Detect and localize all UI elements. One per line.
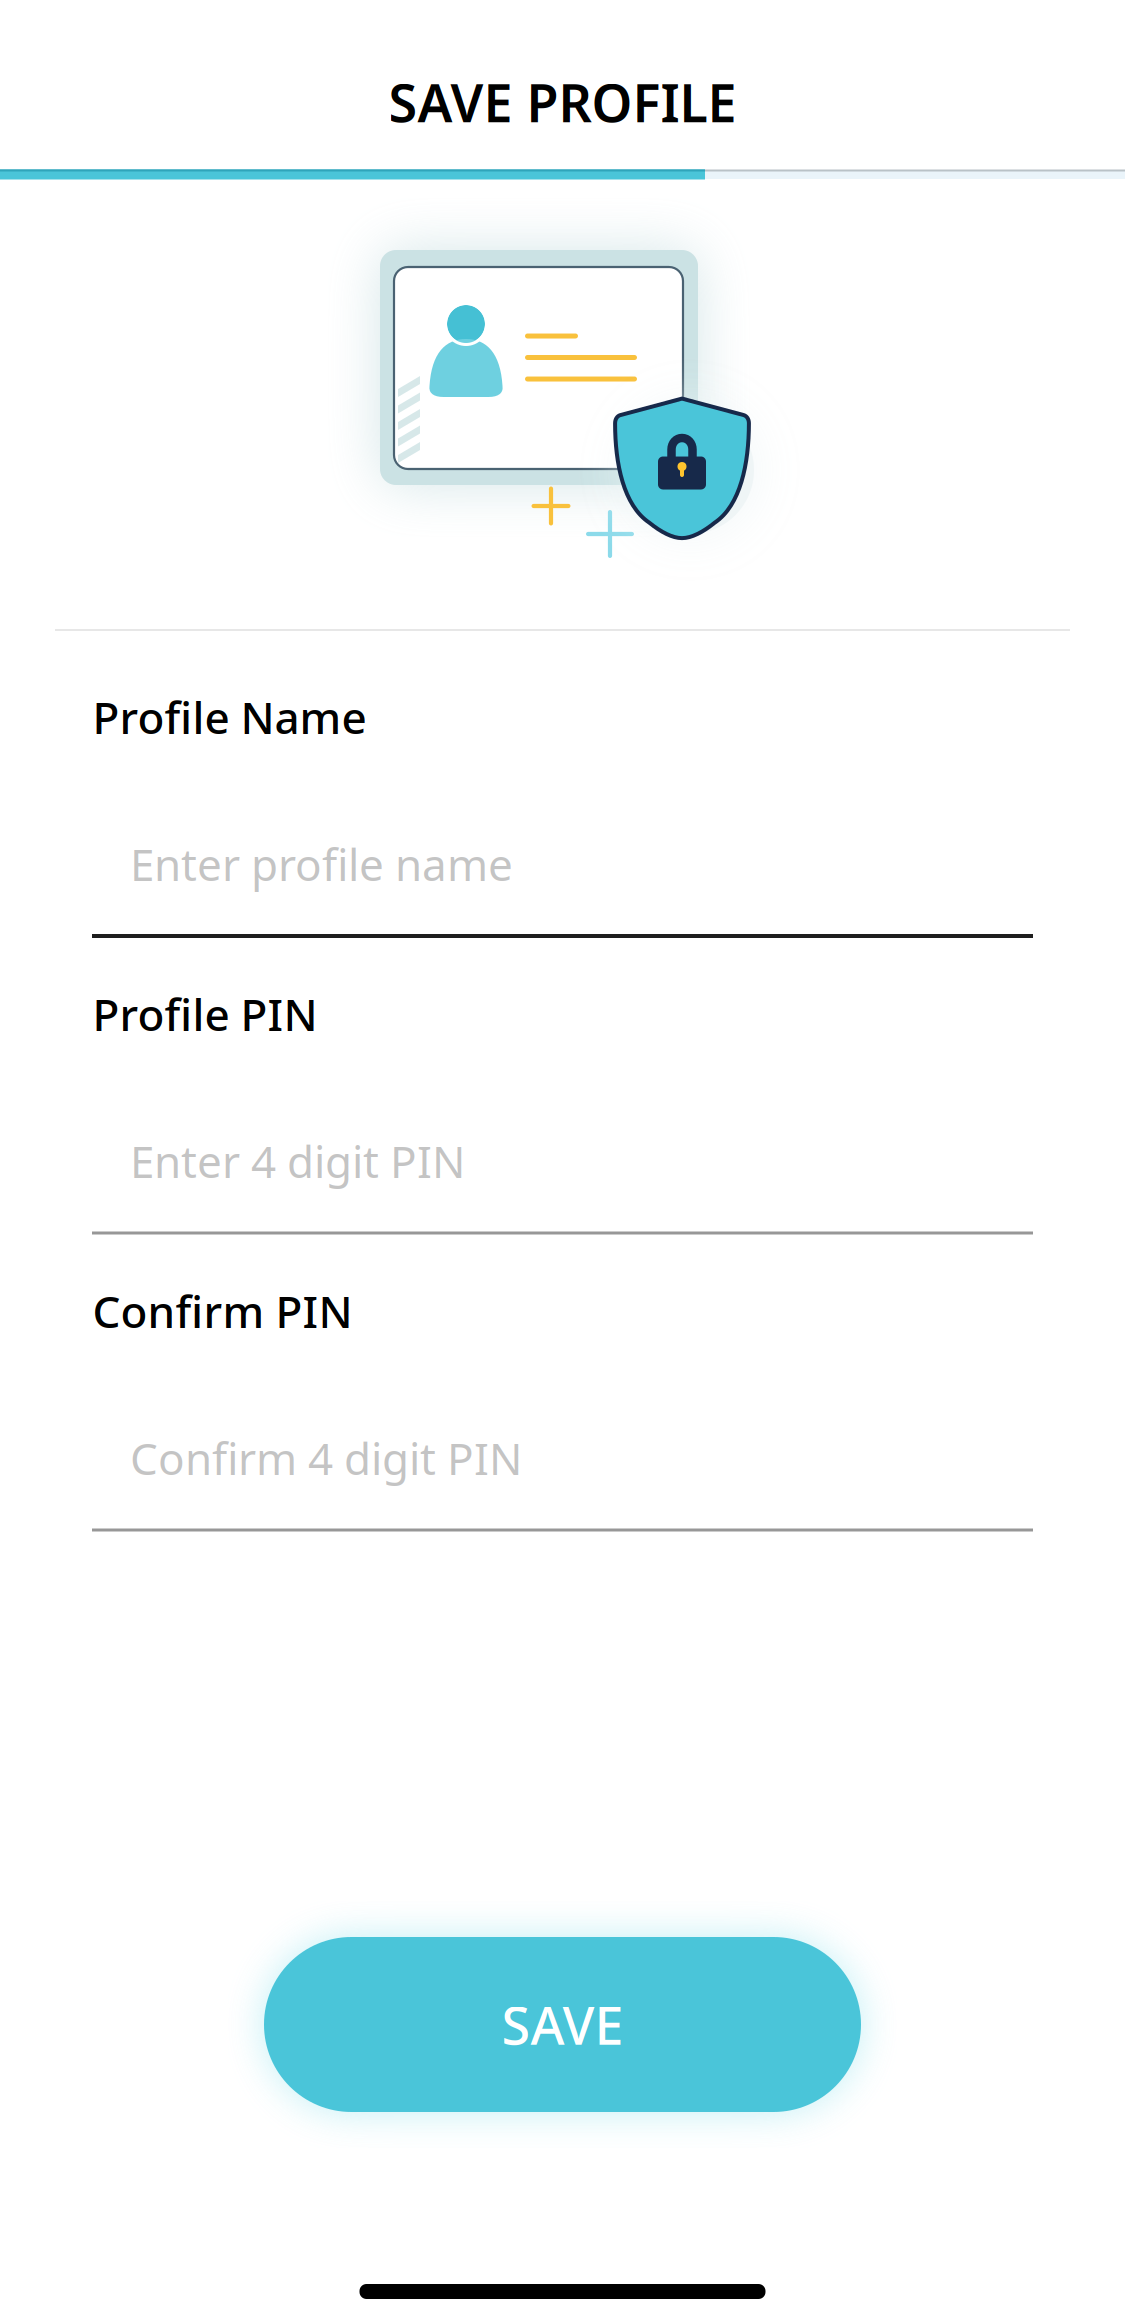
- button[interactable]: SAVE: [264, 1937, 861, 2112]
- button[interactable]: Enter profile name: [92, 820, 1033, 938]
- staticText: Enter 4 digit PIN: [130, 1132, 465, 1190]
- staticText: Confirm PIN: [92, 1282, 352, 1340]
- staticText: SAVE: [501, 1990, 623, 2059]
- button[interactable]: Confirm 4 digit PIN: [92, 1414, 1033, 1532]
- staticText: SAVE PROFILE: [388, 67, 736, 137]
- staticText: Profile PIN: [92, 985, 317, 1043]
- button[interactable]: Enter 4 digit PIN: [92, 1117, 1033, 1235]
- staticText: Profile Name: [92, 688, 366, 746]
- staticText: Enter profile name: [130, 835, 513, 893]
- staticText: Confirm 4 digit PIN: [130, 1429, 522, 1487]
